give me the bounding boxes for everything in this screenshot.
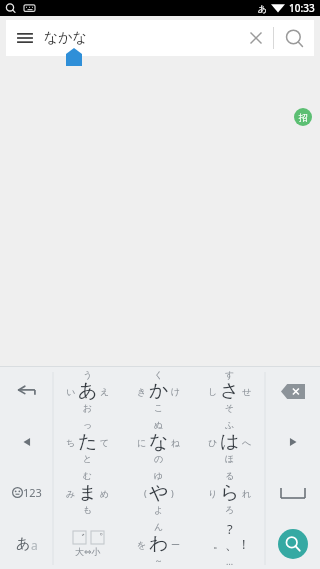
button[interactable]: Menu (6, 20, 314, 56)
staticText: なかな (44, 29, 239, 47)
staticText: か (149, 379, 169, 403)
staticText: え (100, 386, 110, 397)
staticText: あ (258, 3, 268, 14)
staticText: 。 (213, 537, 224, 551)
button[interactable]: Search (274, 20, 314, 56)
button[interactable]: Numbers and symbols (0, 467, 53, 518)
staticText: ゛ (74, 531, 86, 544)
staticText: は (220, 430, 240, 454)
staticText: 招 (299, 112, 308, 123)
staticText: 123 (23, 485, 42, 500)
staticText: の (154, 453, 164, 464)
staticText: ほ (225, 453, 235, 464)
staticText: れ (242, 488, 252, 499)
staticText: た (78, 430, 98, 454)
staticText: ー (171, 539, 180, 550)
staticText: て (100, 437, 110, 448)
staticText: ふ (225, 419, 235, 430)
staticText: お (83, 402, 93, 413)
button[interactable]: Assist (294, 108, 312, 126)
button[interactable]: Clear (239, 20, 273, 56)
staticText: ) (171, 487, 174, 499)
staticText: き (137, 386, 147, 397)
button[interactable]: く (123, 366, 194, 416)
staticText: あ (78, 379, 98, 403)
button[interactable]: Search (265, 518, 320, 569)
button[interactable]: Cursor left (0, 416, 53, 467)
staticText: い (66, 386, 76, 397)
staticText: し (208, 386, 218, 397)
button[interactable]: Space (265, 467, 320, 518)
staticText: に (137, 437, 147, 448)
staticText: り (208, 488, 218, 499)
button[interactable]: ゛ (53, 518, 123, 569)
staticText: く (154, 369, 164, 380)
staticText: す (225, 369, 235, 380)
staticText: う (83, 369, 93, 380)
button[interactable]: ? (194, 518, 265, 569)
staticText: へ (242, 437, 252, 448)
staticText: ぬ (154, 419, 164, 430)
button[interactable]: ゆ (123, 467, 194, 518)
staticText: わ (149, 532, 169, 556)
staticText: ゆ (154, 470, 164, 481)
staticText: ん (154, 521, 164, 532)
button[interactable]: Undo (0, 366, 53, 416)
button[interactable]: む (53, 467, 123, 518)
staticText: ゜ (92, 531, 104, 544)
staticText: 大⇔小 (75, 546, 101, 557)
button[interactable]: う (53, 366, 123, 416)
staticText: よ (154, 504, 164, 515)
button[interactable]: Menu (6, 20, 44, 56)
staticText: 、 (225, 536, 238, 552)
staticText: も (83, 504, 93, 515)
button[interactable]: っ (53, 416, 123, 467)
staticText: ち (66, 437, 76, 448)
staticText: あ (16, 535, 31, 553)
button[interactable]: Backspace (265, 366, 320, 416)
staticText: a (31, 537, 38, 553)
staticText: め (100, 488, 110, 499)
staticText: ? (227, 520, 233, 538)
button[interactable]: Cursor right (265, 416, 320, 467)
staticText: な (149, 430, 169, 454)
staticText: を (137, 539, 147, 550)
staticText: さ (220, 379, 240, 403)
staticText: そ (225, 402, 235, 413)
staticText: ら (220, 481, 240, 505)
staticText: ( (144, 487, 147, 499)
staticText: っ (83, 419, 93, 430)
button[interactable]: る (194, 467, 265, 518)
staticText: ! (242, 535, 246, 553)
button[interactable]: す (194, 366, 265, 416)
staticText: ひ (208, 437, 218, 448)
staticText: 10:33 (289, 1, 315, 15)
button[interactable]: ぬ (123, 416, 194, 467)
staticText: ろ (225, 504, 235, 515)
staticText: み (66, 488, 76, 499)
staticText: せ (242, 386, 252, 397)
button[interactable]: ん (123, 518, 194, 569)
button[interactable]: ふ (194, 416, 265, 467)
staticText: こ (154, 402, 164, 413)
staticText: ～ (154, 555, 163, 566)
staticText: る (225, 470, 235, 481)
staticText: ね (171, 437, 181, 448)
staticText: … (226, 555, 234, 567)
staticText: む (83, 470, 93, 481)
staticText: け (171, 386, 181, 397)
button[interactable]: Switch input mode (0, 518, 53, 569)
staticText: や (149, 481, 169, 505)
staticText: ま (78, 481, 98, 505)
staticText: と (83, 453, 93, 464)
